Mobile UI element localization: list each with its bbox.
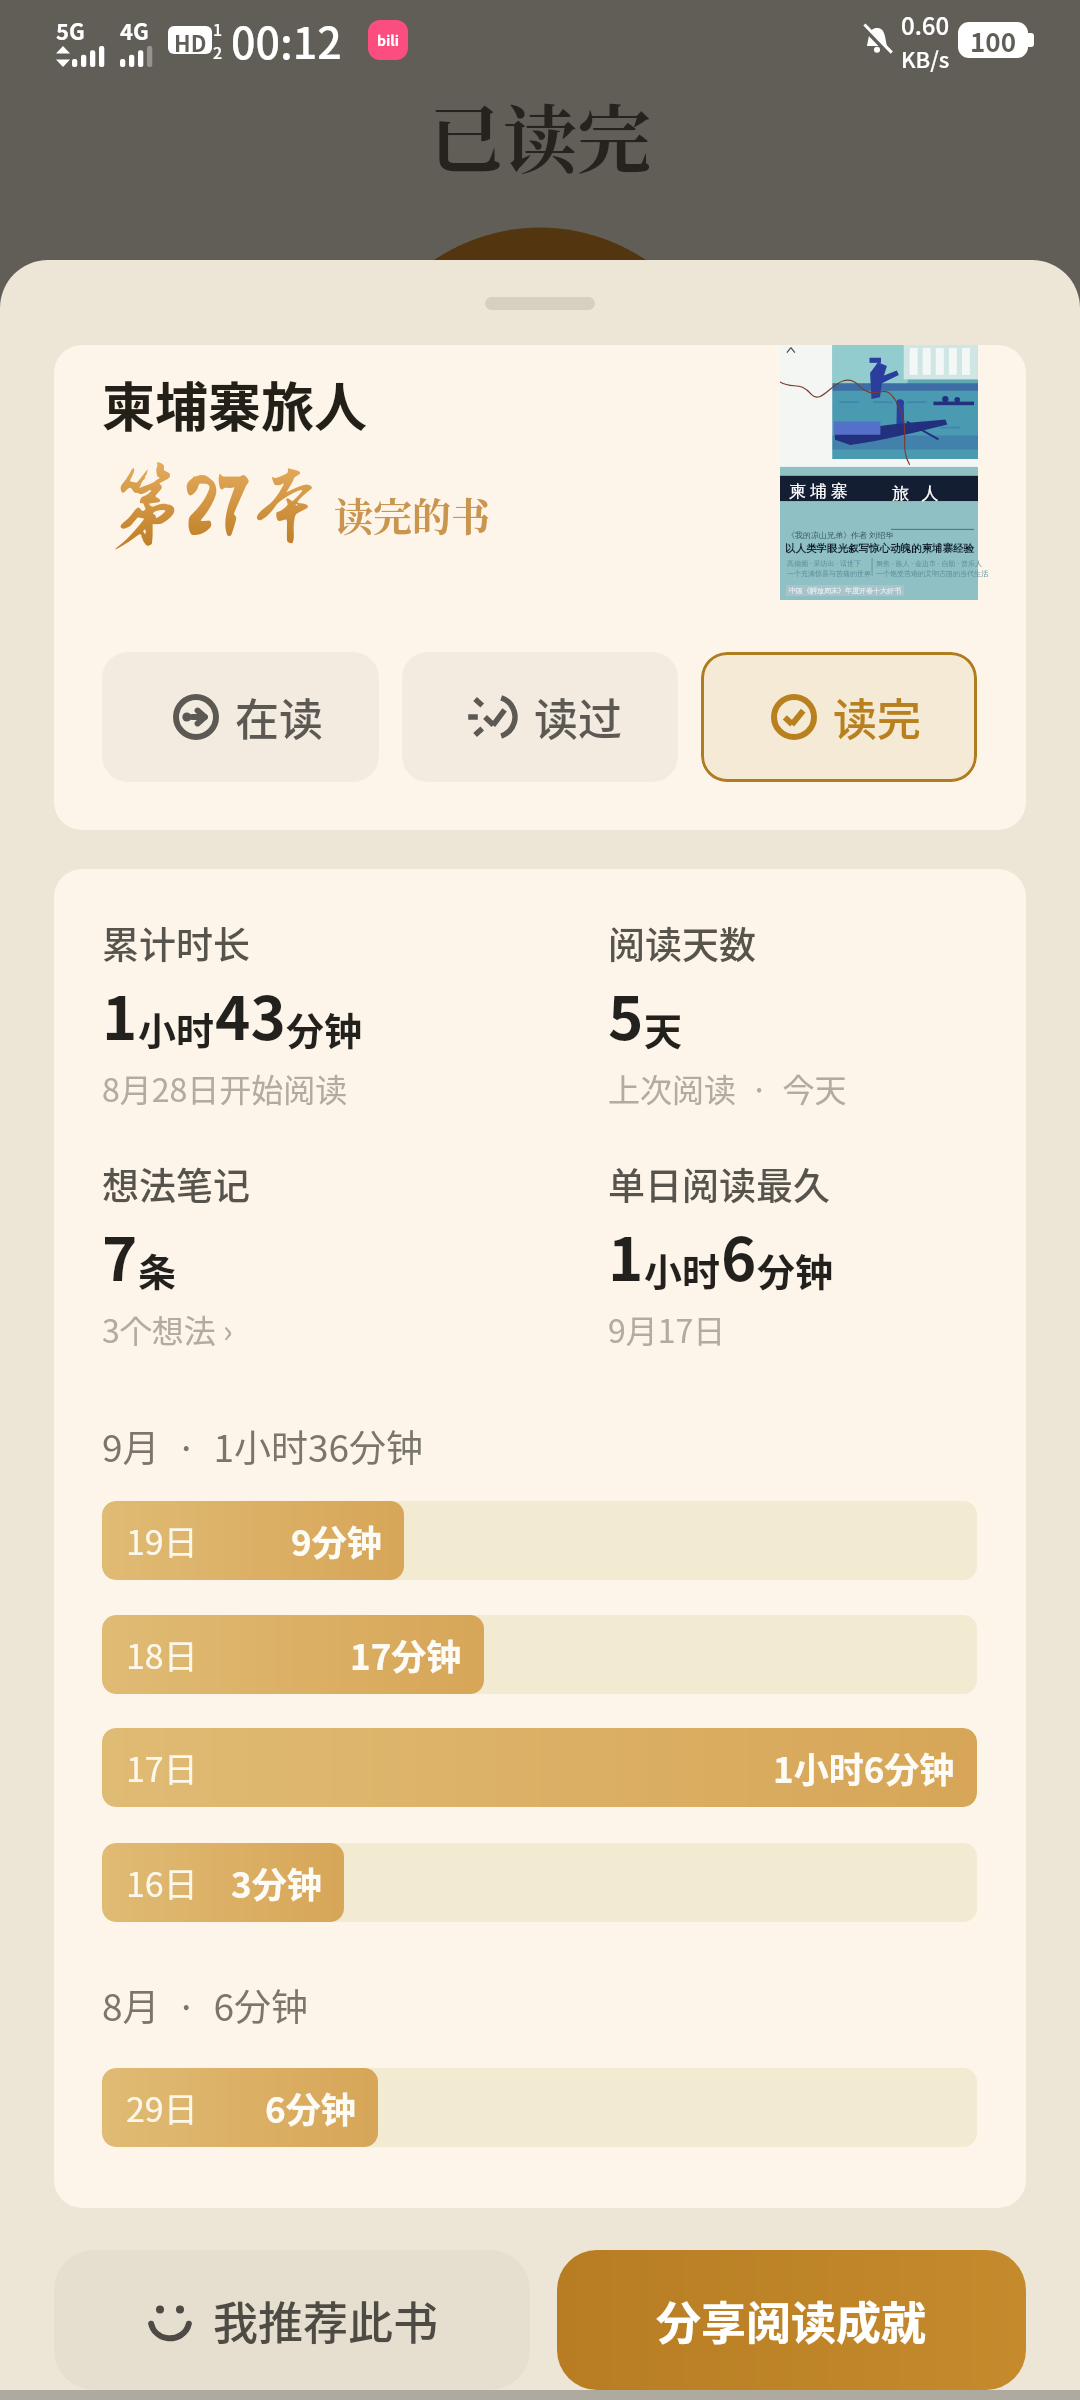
staticText: 19日 xyxy=(126,1516,198,1565)
staticText: 想法笔记 xyxy=(102,1157,250,1211)
staticText: 2 xyxy=(213,40,223,63)
staticText: 聚焦 · 族人 · 金边市 · 自助 · 音乐人 xyxy=(876,559,983,569)
staticText: 3分钟 xyxy=(231,1857,322,1908)
staticText: 3个想法 › xyxy=(102,1306,233,1352)
button[interactable]: 想法笔记 xyxy=(102,1157,250,1352)
staticText: 《我的凉山兄弟》作者 刘绍华 xyxy=(787,529,894,540)
staticText: 8月 · 6分钟 xyxy=(102,1978,308,2032)
staticText: 17分钟 xyxy=(350,1629,462,1680)
staticText: KB/s xyxy=(901,42,950,74)
staticText: 4G xyxy=(120,14,149,46)
staticText: 1 xyxy=(102,970,138,1057)
staticText: 旅 人 xyxy=(892,481,943,504)
staticText: 1 xyxy=(213,17,223,40)
staticText: 分钟 xyxy=(757,1242,834,1297)
button[interactable]: 在读 xyxy=(102,652,379,782)
staticText: 7 xyxy=(102,1211,138,1298)
staticText: 5 xyxy=(608,970,644,1057)
staticText: bili xyxy=(377,30,399,50)
staticText: 分享阅读成就 xyxy=(656,2288,927,2353)
button[interactable]: 19日 xyxy=(102,1501,977,1580)
button[interactable]: 17日 xyxy=(102,1728,977,1807)
staticText: 8月28日开始阅读 xyxy=(102,1065,348,1111)
staticText: 17日 xyxy=(126,1743,198,1792)
staticText: 柬埔寨 xyxy=(787,481,850,502)
staticText: 小时 xyxy=(644,1242,721,1297)
staticText: 读完 xyxy=(833,685,921,749)
staticText: 第27本 xyxy=(106,464,324,550)
button[interactable]: 29日 xyxy=(102,2068,977,2147)
staticText: 条 xyxy=(138,1242,177,1297)
staticText: 高撷频 · 采访出 · 话世下 xyxy=(787,559,862,569)
staticText: 9月 · 1小时36分钟 xyxy=(102,1419,424,1473)
staticText: 已读完 xyxy=(429,82,651,188)
staticText: 43 xyxy=(215,970,286,1057)
button[interactable]: 分享阅读成就 xyxy=(557,2250,1026,2390)
staticText: 累计时长 xyxy=(102,916,250,970)
staticText: 16日 xyxy=(126,1858,198,1907)
button[interactable]: 16日 xyxy=(102,1843,977,1922)
staticText: 1小时6分钟 xyxy=(773,1742,955,1793)
staticText: 00:12 xyxy=(231,9,342,71)
staticText: 1 xyxy=(608,1211,644,1298)
staticText: 我推荐此书 xyxy=(213,2288,439,2353)
button[interactable]: 读完 xyxy=(701,652,977,782)
staticText: 一个充满惊喜与苦痛的世界 xyxy=(787,569,871,578)
staticText: 上次阅读 · 今天 xyxy=(608,1065,847,1111)
staticText: 6 xyxy=(721,1211,757,1298)
staticText: HD xyxy=(174,26,207,54)
staticText: 5G xyxy=(56,14,85,46)
staticText: 读完的书 xyxy=(334,486,491,542)
button[interactable]: 18日 xyxy=(102,1615,977,1694)
staticText: 100 xyxy=(970,22,1017,58)
staticText: 6分钟 xyxy=(265,2082,356,2133)
staticText: 9分钟 xyxy=(291,1515,382,1566)
staticText: 在读 xyxy=(235,685,323,749)
staticText: 天 xyxy=(644,1001,683,1056)
button[interactable]: 我推荐此书 xyxy=(54,2250,530,2390)
staticText: 0.60 xyxy=(901,7,950,42)
staticText: 柬埔寨旅人 xyxy=(102,366,367,443)
staticText: 以人类学眼光叙写惊心动魄的柬埔寨经验 xyxy=(785,542,974,555)
staticText: 9月17日 xyxy=(608,1306,726,1352)
other: Silent xyxy=(859,22,895,58)
other: bilibili xyxy=(368,20,408,60)
button[interactable]: 读过 xyxy=(402,652,678,782)
staticText: 阅读天数 xyxy=(608,916,756,970)
staticText: 分钟 xyxy=(286,1001,363,1056)
staticText: 小时 xyxy=(138,1001,215,1056)
staticText: 29日 xyxy=(126,2083,198,2132)
staticText: 18日 xyxy=(126,1630,198,1679)
staticText: 一个饱受苦难的文明古国的当代生活 xyxy=(876,569,988,578)
staticText: 单日阅读最久 xyxy=(608,1157,830,1211)
staticText: 读过 xyxy=(534,685,622,749)
staticText: 中国《解放周末》年度开卷十大好书 xyxy=(789,586,901,595)
